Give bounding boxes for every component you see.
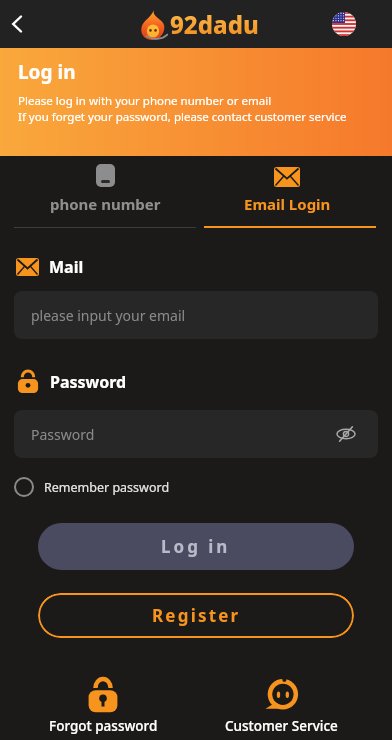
button[interactable] [0,7,34,41]
staticText: Email Login [244,194,331,214]
button[interactable]: phone number [14,156,196,214]
staticText: Mail [49,256,84,278]
staticText: Log in [18,59,76,85]
staticText: phone number [50,194,161,214]
button[interactable]: Email Login [196,156,378,214]
staticText: Customer Service [225,717,338,735]
button[interactable]: Remember password [14,477,170,497]
staticText: please input your email [31,306,186,325]
staticText: Please log in with your phone number or … [18,93,272,109]
staticText: Password [50,371,127,393]
button[interactable]: Forgot password [14,677,192,735]
staticText: Log in [161,535,231,558]
staticText: Remember password [44,479,170,496]
button[interactable]: Register [38,593,354,638]
button[interactable] [332,12,356,36]
staticText: Register [152,604,241,627]
button[interactable]: Customer Service [192,677,370,735]
staticText: Forgot password [49,717,158,735]
staticText: If you forget your password, please cont… [18,109,347,125]
button[interactable]: please input your email [14,291,378,339]
button[interactable]: Log in [38,523,354,570]
button[interactable]: Password [14,410,378,458]
staticText: Password [31,425,95,444]
staticText: 92dadu [170,8,259,41]
